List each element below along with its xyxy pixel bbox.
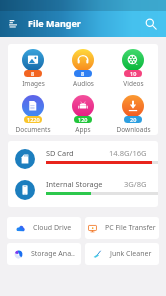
staticText: 120 — [78, 116, 88, 123]
staticText: Apps — [75, 125, 91, 134]
staticText: File Manger — [28, 17, 81, 29]
button[interactable]: 120 — [58, 90, 108, 135]
button[interactable]: 1220 — [8, 90, 58, 135]
button[interactable]: Junk Cleaner — [85, 243, 159, 265]
staticText: 3G/8G — [124, 179, 147, 189]
button[interactable]: 20 — [108, 90, 158, 135]
button[interactable]: SD Card — [8, 144, 158, 175]
button[interactable]: Cloud Drive — [7, 217, 81, 239]
button[interactable]: Storage Ana.. — [7, 243, 81, 265]
button[interactable]: 10 — [108, 44, 158, 90]
staticText: Storage Ana.. — [31, 249, 75, 259]
staticText: Junk Cleaner — [110, 249, 152, 259]
button[interactable]: Internal Storage — [8, 175, 158, 207]
staticText: Cloud Drive — [33, 223, 72, 233]
button[interactable]: Search — [141, 14, 161, 34]
staticText: 1220 — [27, 116, 40, 123]
staticText: 20 — [130, 116, 137, 123]
staticText: 8 — [81, 70, 85, 77]
staticText: Downloads — [116, 125, 151, 134]
staticText: Documents — [15, 125, 51, 134]
staticText: Internal Storage — [46, 179, 103, 189]
staticText: 10 — [130, 70, 137, 77]
staticText: 8 — [31, 70, 35, 77]
button[interactable]: Menu — [5, 16, 21, 32]
staticText: SD Card — [46, 148, 74, 158]
staticText: PC File Transfer — [105, 223, 156, 233]
button[interactable]: 8 — [58, 44, 108, 90]
staticText: Audios — [73, 79, 94, 88]
staticText: Images — [22, 79, 45, 88]
button[interactable]: PC File Transfer — [85, 217, 159, 239]
button[interactable]: 8 — [8, 44, 58, 90]
staticText: 14.8G/16G — [109, 148, 147, 158]
staticText: Videos — [123, 79, 144, 88]
